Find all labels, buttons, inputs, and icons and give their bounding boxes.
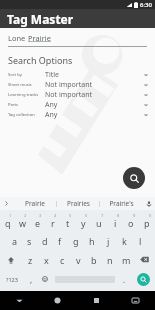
staticText: k bbox=[122, 235, 127, 247]
button[interactable]: 7 bbox=[91, 212, 107, 231]
staticText: y bbox=[81, 217, 86, 229]
staticText: e bbox=[35, 217, 41, 229]
button[interactable]: Recent apps bbox=[77, 291, 116, 310]
staticText: s bbox=[27, 235, 32, 247]
button[interactable]: Search bbox=[123, 167, 145, 189]
staticText: Prairie bbox=[28, 33, 51, 43]
staticText: d bbox=[42, 235, 48, 247]
button[interactable]: 9 bbox=[123, 212, 139, 231]
staticText: t bbox=[66, 217, 70, 229]
staticText: Lone bbox=[8, 33, 28, 43]
button[interactable]: 2 bbox=[15, 212, 30, 231]
staticText: 5 bbox=[69, 213, 72, 218]
button[interactable]: s bbox=[22, 231, 37, 250]
staticText: a bbox=[12, 235, 18, 247]
button[interactable]: Prairie's bbox=[100, 197, 142, 210]
staticText: Any bbox=[45, 110, 143, 120]
button[interactable]: Sort by bbox=[0, 70, 155, 80]
button[interactable]: j bbox=[100, 231, 116, 250]
staticText: 6:30 bbox=[140, 1, 152, 9]
button[interactable]: h bbox=[84, 231, 100, 250]
staticText: Title bbox=[45, 70, 143, 80]
staticText: c bbox=[60, 254, 65, 266]
button[interactable]: Emoji bbox=[38, 269, 52, 289]
button[interactable]: , bbox=[24, 269, 38, 289]
staticText: Prairie bbox=[25, 199, 45, 208]
staticText: Sheet music bbox=[8, 82, 45, 88]
button[interactable]: l bbox=[132, 231, 148, 250]
staticText: 9 bbox=[133, 213, 136, 218]
button[interactable]: f bbox=[52, 231, 68, 250]
staticText: 1 bbox=[9, 213, 12, 218]
staticText: q bbox=[5, 217, 11, 229]
staticText: f bbox=[58, 235, 62, 247]
staticText: v bbox=[76, 254, 81, 266]
staticText: Search Options bbox=[8, 54, 73, 66]
button[interactable]: Backspace bbox=[134, 250, 155, 269]
button[interactable]: 4 bbox=[45, 212, 60, 231]
staticText: Any bbox=[45, 100, 143, 110]
staticText: Sort by bbox=[8, 72, 45, 78]
button[interactable]: z bbox=[22, 250, 38, 269]
staticText: u bbox=[96, 217, 102, 229]
button[interactable]: Sheet music bbox=[0, 80, 155, 90]
button[interactable]: m bbox=[118, 250, 134, 269]
staticText: Learning tracks bbox=[8, 92, 45, 98]
staticText: Tag collection bbox=[8, 112, 45, 118]
staticText: r bbox=[51, 217, 55, 229]
staticText: m bbox=[122, 254, 131, 266]
staticText: 8 bbox=[117, 213, 120, 218]
button[interactable]: d bbox=[37, 231, 52, 250]
staticText: b bbox=[91, 254, 97, 266]
button[interactable]: Shift bbox=[0, 250, 22, 269]
button[interactable]: b bbox=[86, 250, 102, 269]
staticText: Not important bbox=[45, 90, 143, 100]
staticText: n bbox=[107, 254, 113, 266]
button[interactable]: 1 bbox=[0, 212, 15, 231]
button[interactable]: c bbox=[54, 250, 70, 269]
button[interactable]: 5 bbox=[60, 212, 75, 231]
button[interactable]: Prairies bbox=[57, 197, 99, 210]
staticText: j bbox=[107, 235, 110, 247]
button[interactable]: Home bbox=[38, 291, 77, 310]
button[interactable]: Tag collection bbox=[0, 110, 155, 120]
button[interactable]: Learning tracks bbox=[0, 90, 155, 100]
button[interactable]: More suggestions bbox=[0, 197, 13, 210]
staticText: p bbox=[144, 217, 150, 229]
staticText: , bbox=[30, 274, 33, 285]
staticText: i bbox=[114, 217, 117, 229]
button[interactable]: Search bbox=[131, 269, 155, 289]
staticText: 7 bbox=[101, 213, 104, 218]
staticText: Parts bbox=[8, 102, 45, 108]
staticText: . bbox=[123, 274, 126, 285]
button[interactable]: k bbox=[116, 231, 132, 250]
staticText: Prairies bbox=[67, 199, 90, 208]
staticText: l bbox=[139, 235, 142, 247]
staticText: h bbox=[89, 235, 95, 247]
button[interactable]: Voice input bbox=[142, 197, 155, 210]
staticText: g bbox=[73, 235, 79, 247]
staticText: 3 bbox=[39, 213, 42, 218]
button[interactable]: Prairie bbox=[13, 197, 56, 210]
button[interactable]: 3 bbox=[30, 212, 45, 231]
button[interactable]: 0 bbox=[139, 212, 155, 231]
staticText: 6 bbox=[85, 213, 88, 218]
button[interactable]: Keyboard bbox=[116, 291, 155, 310]
staticText: z bbox=[28, 254, 33, 266]
button[interactable]: Parts bbox=[0, 100, 155, 110]
button[interactable]: n bbox=[102, 250, 118, 269]
button[interactable]: v bbox=[70, 250, 86, 269]
button[interactable]: g bbox=[68, 231, 84, 250]
button[interactable]: x bbox=[38, 250, 54, 269]
button[interactable]: 8 bbox=[107, 212, 123, 231]
button[interactable]: a bbox=[7, 231, 22, 250]
button[interactable]: Space bbox=[52, 269, 117, 289]
button[interactable]: . bbox=[117, 269, 131, 289]
staticText: Prairie's bbox=[109, 199, 134, 208]
button[interactable]: ?123 bbox=[0, 269, 24, 289]
staticText: o bbox=[128, 217, 134, 229]
staticText: Tag Master bbox=[7, 11, 74, 27]
staticText: 2 bbox=[24, 213, 27, 218]
button[interactable]: 6 bbox=[75, 212, 91, 231]
button[interactable]: Back bbox=[0, 291, 38, 310]
